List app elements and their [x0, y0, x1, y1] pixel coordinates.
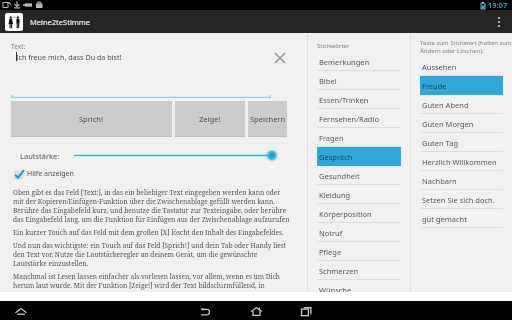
staticText: das Eingabefeld lang, um die Funktion fü…: [13, 215, 289, 224]
button[interactable]: Notruf: [317, 223, 401, 242]
staticText: Essen/Trinken: [319, 95, 369, 105]
staticText: Gesundheit: [319, 171, 360, 181]
button[interactable]: More options: [494, 15, 504, 29]
staticText: Zeige!: [199, 114, 221, 124]
button[interactable]: Bibel: [317, 71, 401, 90]
button[interactable]: Clear text: [272, 50, 288, 66]
button[interactable]: Speichern: [248, 101, 287, 137]
button[interactable]: Fernsehen/Radio: [317, 109, 401, 128]
staticText: Guten Morgen: [422, 119, 474, 129]
button[interactable]: Körperposition: [317, 204, 401, 223]
staticText: Stichwörter: [317, 42, 350, 50]
staticText: Manchmal ist Lesen lassen einfacher als …: [13, 272, 281, 281]
staticText: Freude: [422, 81, 447, 91]
staticText: Notruf: [319, 228, 343, 238]
staticText: Ich freue mich, dass Du da bist!: [16, 52, 122, 62]
staticText: Körperposition: [319, 209, 372, 219]
button[interactable]: gut gemacht: [420, 209, 503, 228]
button[interactable]: Sprich!: [11, 101, 172, 137]
staticText: den Text vor. Nutze die Lautstärkeregler…: [13, 250, 258, 259]
staticText: Bibel: [319, 76, 337, 86]
button[interactable]: Home: [247, 302, 265, 320]
button[interactable]: Essen/Trinken: [317, 90, 401, 109]
staticText: Bemerkungen: [319, 57, 370, 67]
staticText: Gespräch: [319, 152, 353, 162]
staticText: Texte zum Stichwort (halten zum: [420, 39, 512, 47]
staticText: Hilfe anzeigen: [27, 169, 74, 179]
staticText: Ändern oder Löschen):: [420, 47, 484, 55]
button[interactable]: Nachbarn: [420, 171, 503, 190]
button[interactable]: Bemerkungen: [317, 52, 401, 71]
staticText: Fernsehen/Radio: [319, 114, 379, 124]
staticText: Meine2teStimme: [30, 17, 91, 27]
staticText: Speichern: [250, 114, 286, 124]
button[interactable]: Guten Tag: [420, 133, 503, 152]
button[interactable]: Pflege: [317, 242, 401, 261]
staticText: Setzen Sie sich doch.: [422, 195, 495, 205]
button[interactable]: Zeige!: [175, 101, 245, 137]
staticText: Und nun das wichtigste: ein Touch auf da…: [13, 241, 287, 250]
button[interactable]: Setzen Sie sich doch.: [420, 190, 503, 209]
staticText: Aussehen: [422, 62, 457, 72]
button[interactable]: Collapse navigation: [12, 302, 30, 320]
button[interactable]: Gespräch: [317, 147, 401, 166]
staticText: Fragen: [319, 133, 344, 143]
button[interactable]: Guten Morgen: [420, 114, 503, 133]
button[interactable]: Hilfe anzeigen: [15, 169, 74, 179]
staticText: Nachbarn: [422, 176, 457, 186]
button[interactable]: Guten Abend: [420, 95, 503, 114]
button[interactable]: Fragen: [317, 128, 401, 147]
staticText: mit der Kopieren/Einfügen-Funktion über …: [13, 197, 275, 206]
staticText: Text:: [11, 42, 26, 51]
staticText: herum laut wurde. Mit der Funktion [Zeig…: [13, 281, 265, 290]
staticText: 19:07: [488, 0, 508, 10]
staticText: Guten Tag: [422, 138, 459, 148]
staticText: Lautstärke:: [20, 151, 60, 161]
staticText: gut gemacht: [422, 214, 467, 224]
staticText: Schmerzen: [319, 266, 359, 276]
staticText: Pflege: [319, 247, 342, 257]
staticText: Ein kurzer Touch auf das Feld mit dem gr…: [13, 228, 284, 237]
staticText: Guten Abend: [422, 100, 469, 110]
button[interactable]: Wünsche: [317, 280, 401, 292]
button[interactable]: Aussehen: [420, 57, 503, 76]
button[interactable]: Gesundheit: [317, 166, 401, 185]
button[interactable]: Kleidung: [317, 185, 401, 204]
button[interactable]: Recent apps: [297, 302, 315, 320]
staticText: Herzlich Willkommen: [422, 157, 497, 167]
staticText: Wünsche: [319, 285, 352, 292]
button[interactable]: Schmerzen: [317, 261, 401, 280]
staticText: Berühre das Eingabefeld kurz, und benutz…: [13, 206, 287, 215]
button[interactable]: Herzlich Willkommen: [420, 152, 503, 171]
staticText: Sprich!: [79, 114, 104, 124]
staticText: Kleidung: [319, 190, 351, 200]
button[interactable]: Freude: [420, 76, 503, 95]
staticText: Oben gibt es das Feld [Text:], in das ei…: [13, 188, 281, 197]
button[interactable]: Back: [196, 302, 214, 320]
staticText: Lautstärke einzustellen.: [13, 259, 89, 268]
